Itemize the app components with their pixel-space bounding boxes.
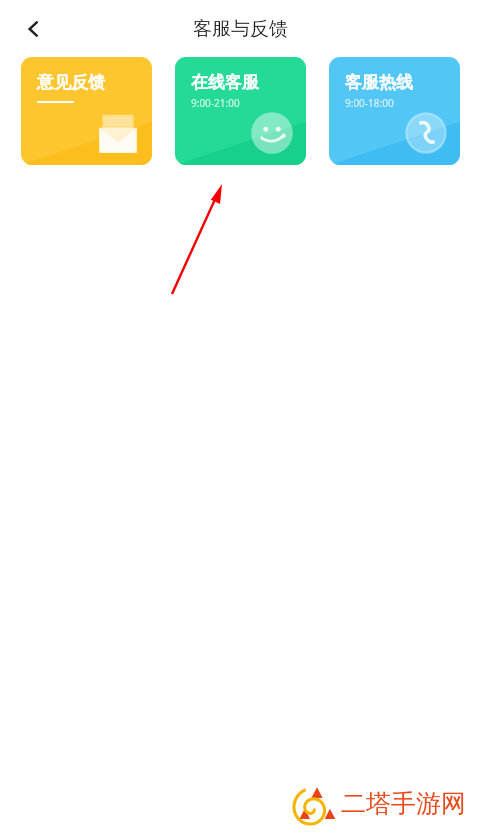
staticText: 客服与反馈 [193,17,288,41]
button[interactable]: 客服热线 [329,57,460,165]
staticText: 二塔手游网 [341,788,466,819]
staticText: 9:00-21:00 [191,96,240,110]
button[interactable]: Back [12,7,56,51]
staticText: 客服热线 [345,72,413,93]
staticText: 9:00-18:00 [345,96,394,110]
button[interactable]: 意见反馈 [21,57,152,165]
button[interactable]: 在线客服 [175,57,306,165]
staticText: 意见反馈 [37,72,105,93]
staticText: 在线客服 [191,72,259,93]
